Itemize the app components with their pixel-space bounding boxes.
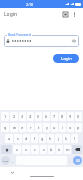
button[interactable]: w bbox=[10, 123, 18, 132]
staticText: 7 bbox=[53, 114, 56, 119]
button[interactable]: 6 bbox=[43, 112, 50, 121]
button[interactable]: x bbox=[22, 145, 30, 154]
staticText: 4 bbox=[29, 114, 32, 119]
staticText: i bbox=[62, 125, 63, 130]
staticText: a bbox=[8, 136, 11, 141]
staticText: 5 bbox=[37, 114, 40, 119]
staticText: x bbox=[25, 147, 28, 152]
button[interactable]: 3 bbox=[19, 112, 26, 121]
staticText: 2:10 bbox=[26, 2, 34, 7]
staticText: o bbox=[69, 125, 72, 130]
staticText: l bbox=[74, 136, 75, 141]
button[interactable]: u bbox=[51, 123, 58, 132]
button[interactable]: 1 bbox=[1, 112, 9, 121]
button[interactable]: h bbox=[47, 134, 54, 143]
button[interactable]: y bbox=[43, 123, 50, 132]
staticText: v bbox=[43, 147, 45, 152]
button[interactable]: Shift bbox=[1, 145, 12, 154]
button[interactable]: z bbox=[13, 145, 21, 154]
staticText: 6 bbox=[45, 114, 48, 119]
button[interactable]: i bbox=[59, 123, 66, 132]
staticText: p bbox=[77, 125, 80, 130]
button[interactable]: More options bbox=[70, 10, 79, 19]
staticText: s bbox=[17, 136, 19, 141]
staticText: e bbox=[21, 125, 24, 130]
staticText: d bbox=[25, 136, 28, 141]
button[interactable]: q bbox=[1, 123, 9, 132]
button[interactable]: g bbox=[39, 134, 46, 143]
button[interactable]: c bbox=[31, 145, 39, 154]
button[interactable]: Scan bbox=[61, 10, 70, 19]
button[interactable]: Show password bbox=[71, 38, 77, 44]
button[interactable]: f bbox=[31, 134, 38, 143]
button[interactable]: l bbox=[71, 134, 78, 143]
staticText: , bbox=[12, 158, 14, 163]
staticText: z bbox=[16, 147, 18, 152]
button[interactable]: 0 bbox=[75, 112, 82, 121]
button[interactable]: 5 bbox=[35, 112, 42, 121]
staticText: 0 bbox=[77, 114, 80, 119]
button[interactable]: v bbox=[40, 145, 47, 154]
staticText: b bbox=[50, 147, 53, 152]
staticText: k bbox=[65, 136, 68, 141]
button[interactable]: ?123 bbox=[1, 156, 10, 165]
staticText: Login bbox=[61, 56, 72, 61]
staticText: Login bbox=[4, 11, 18, 18]
staticText: w bbox=[13, 125, 16, 130]
button[interactable]: 2 bbox=[10, 112, 18, 121]
button[interactable]: Show password bbox=[4, 35, 79, 47]
staticText: u bbox=[53, 125, 56, 130]
staticText: q bbox=[4, 125, 7, 130]
button[interactable]: r bbox=[27, 123, 34, 132]
staticText: r bbox=[30, 125, 32, 130]
staticText: . bbox=[69, 158, 71, 163]
staticText: n bbox=[58, 147, 61, 152]
button[interactable]: Period bbox=[68, 156, 72, 165]
staticText: h bbox=[49, 136, 52, 141]
staticText: 9 bbox=[69, 114, 72, 119]
staticText: ?123 bbox=[3, 159, 9, 162]
staticText: t bbox=[38, 125, 40, 130]
button[interactable]: Login bbox=[53, 54, 79, 63]
staticText: y bbox=[46, 125, 48, 130]
staticText: j bbox=[58, 136, 59, 141]
button[interactable]: t bbox=[35, 123, 42, 132]
staticText: m bbox=[66, 147, 70, 152]
button[interactable]: m bbox=[64, 145, 71, 154]
button[interactable]: Hide keyboard bbox=[9, 169, 15, 175]
button[interactable]: n bbox=[56, 145, 63, 154]
button[interactable]: b bbox=[48, 145, 55, 154]
staticText: 3 bbox=[21, 114, 24, 119]
button[interactable]: k bbox=[63, 134, 70, 143]
staticText: GO bbox=[76, 159, 80, 163]
button[interactable]: 9 bbox=[67, 112, 74, 121]
button[interactable]: j bbox=[55, 134, 62, 143]
staticText: 2 bbox=[13, 114, 16, 119]
button[interactable]: d bbox=[23, 134, 30, 143]
button[interactable]: 8 bbox=[59, 112, 66, 121]
button[interactable]: p bbox=[75, 123, 82, 132]
button[interactable]: Backspace bbox=[72, 145, 82, 154]
staticText: c bbox=[34, 147, 36, 152]
button[interactable]: e bbox=[19, 123, 26, 132]
staticText: 1 bbox=[4, 114, 7, 119]
button[interactable]: a bbox=[5, 134, 13, 143]
button[interactable]: o bbox=[67, 123, 74, 132]
button[interactable]: Enter bbox=[73, 156, 82, 165]
button[interactable]: 7 bbox=[51, 112, 58, 121]
button[interactable]: s bbox=[14, 134, 22, 143]
staticText: Bank Password bbox=[8, 33, 31, 37]
button[interactable]: 4 bbox=[27, 112, 34, 121]
button[interactable]: Comma bbox=[11, 156, 15, 165]
staticText: f bbox=[34, 136, 36, 141]
staticText: 8 bbox=[61, 114, 64, 119]
staticText: g bbox=[41, 136, 44, 141]
